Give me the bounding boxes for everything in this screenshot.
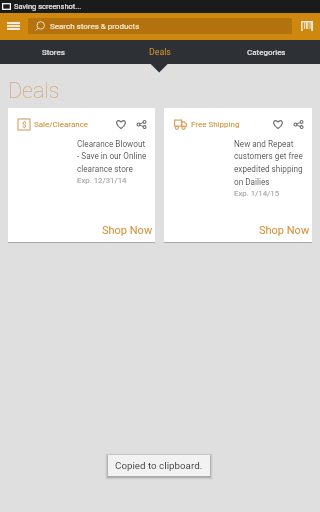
button[interactable]: Stores: [0, 40, 106, 64]
staticText: New and Repeat customers get free expedi…: [234, 139, 306, 187]
button[interactable]: Free Shipping: [164, 108, 312, 242]
staticText: Saving screenshot...: [14, 2, 82, 11]
staticText: Exp. 1/14/15: [234, 189, 280, 198]
button[interactable]: Menu: [0, 13, 28, 40]
button[interactable]: Deals: [106, 40, 213, 64]
button[interactable]: $: [8, 108, 155, 242]
button[interactable]: Favorite: [271, 119, 284, 130]
staticText: Stores: [42, 48, 65, 57]
staticText: Search stores & products: [50, 22, 140, 31]
staticText: Deals: [149, 47, 171, 57]
staticText: Free Shipping: [191, 120, 240, 129]
staticText: $: [22, 120, 27, 129]
staticText: Clearance Blowout - Save in our Online c…: [77, 139, 149, 174]
button[interactable]: Share: [292, 119, 305, 130]
button[interactable]: Favorite: [114, 119, 127, 130]
staticText: Exp. 12/31/14: [77, 176, 127, 185]
button[interactable]: Shop Now: [259, 224, 310, 237]
staticText: Categories: [247, 48, 286, 57]
button[interactable]: Categories: [213, 40, 320, 64]
button[interactable]: Search stores & products: [28, 18, 292, 34]
staticText: Deals: [8, 78, 60, 103]
staticText: Sale/Clearance: [34, 120, 89, 129]
button[interactable]: Shop Now: [102, 224, 153, 237]
staticText: Copied to clipboard.: [115, 460, 203, 471]
button[interactable]: Scan barcode: [294, 14, 320, 40]
button[interactable]: Share: [135, 119, 148, 130]
